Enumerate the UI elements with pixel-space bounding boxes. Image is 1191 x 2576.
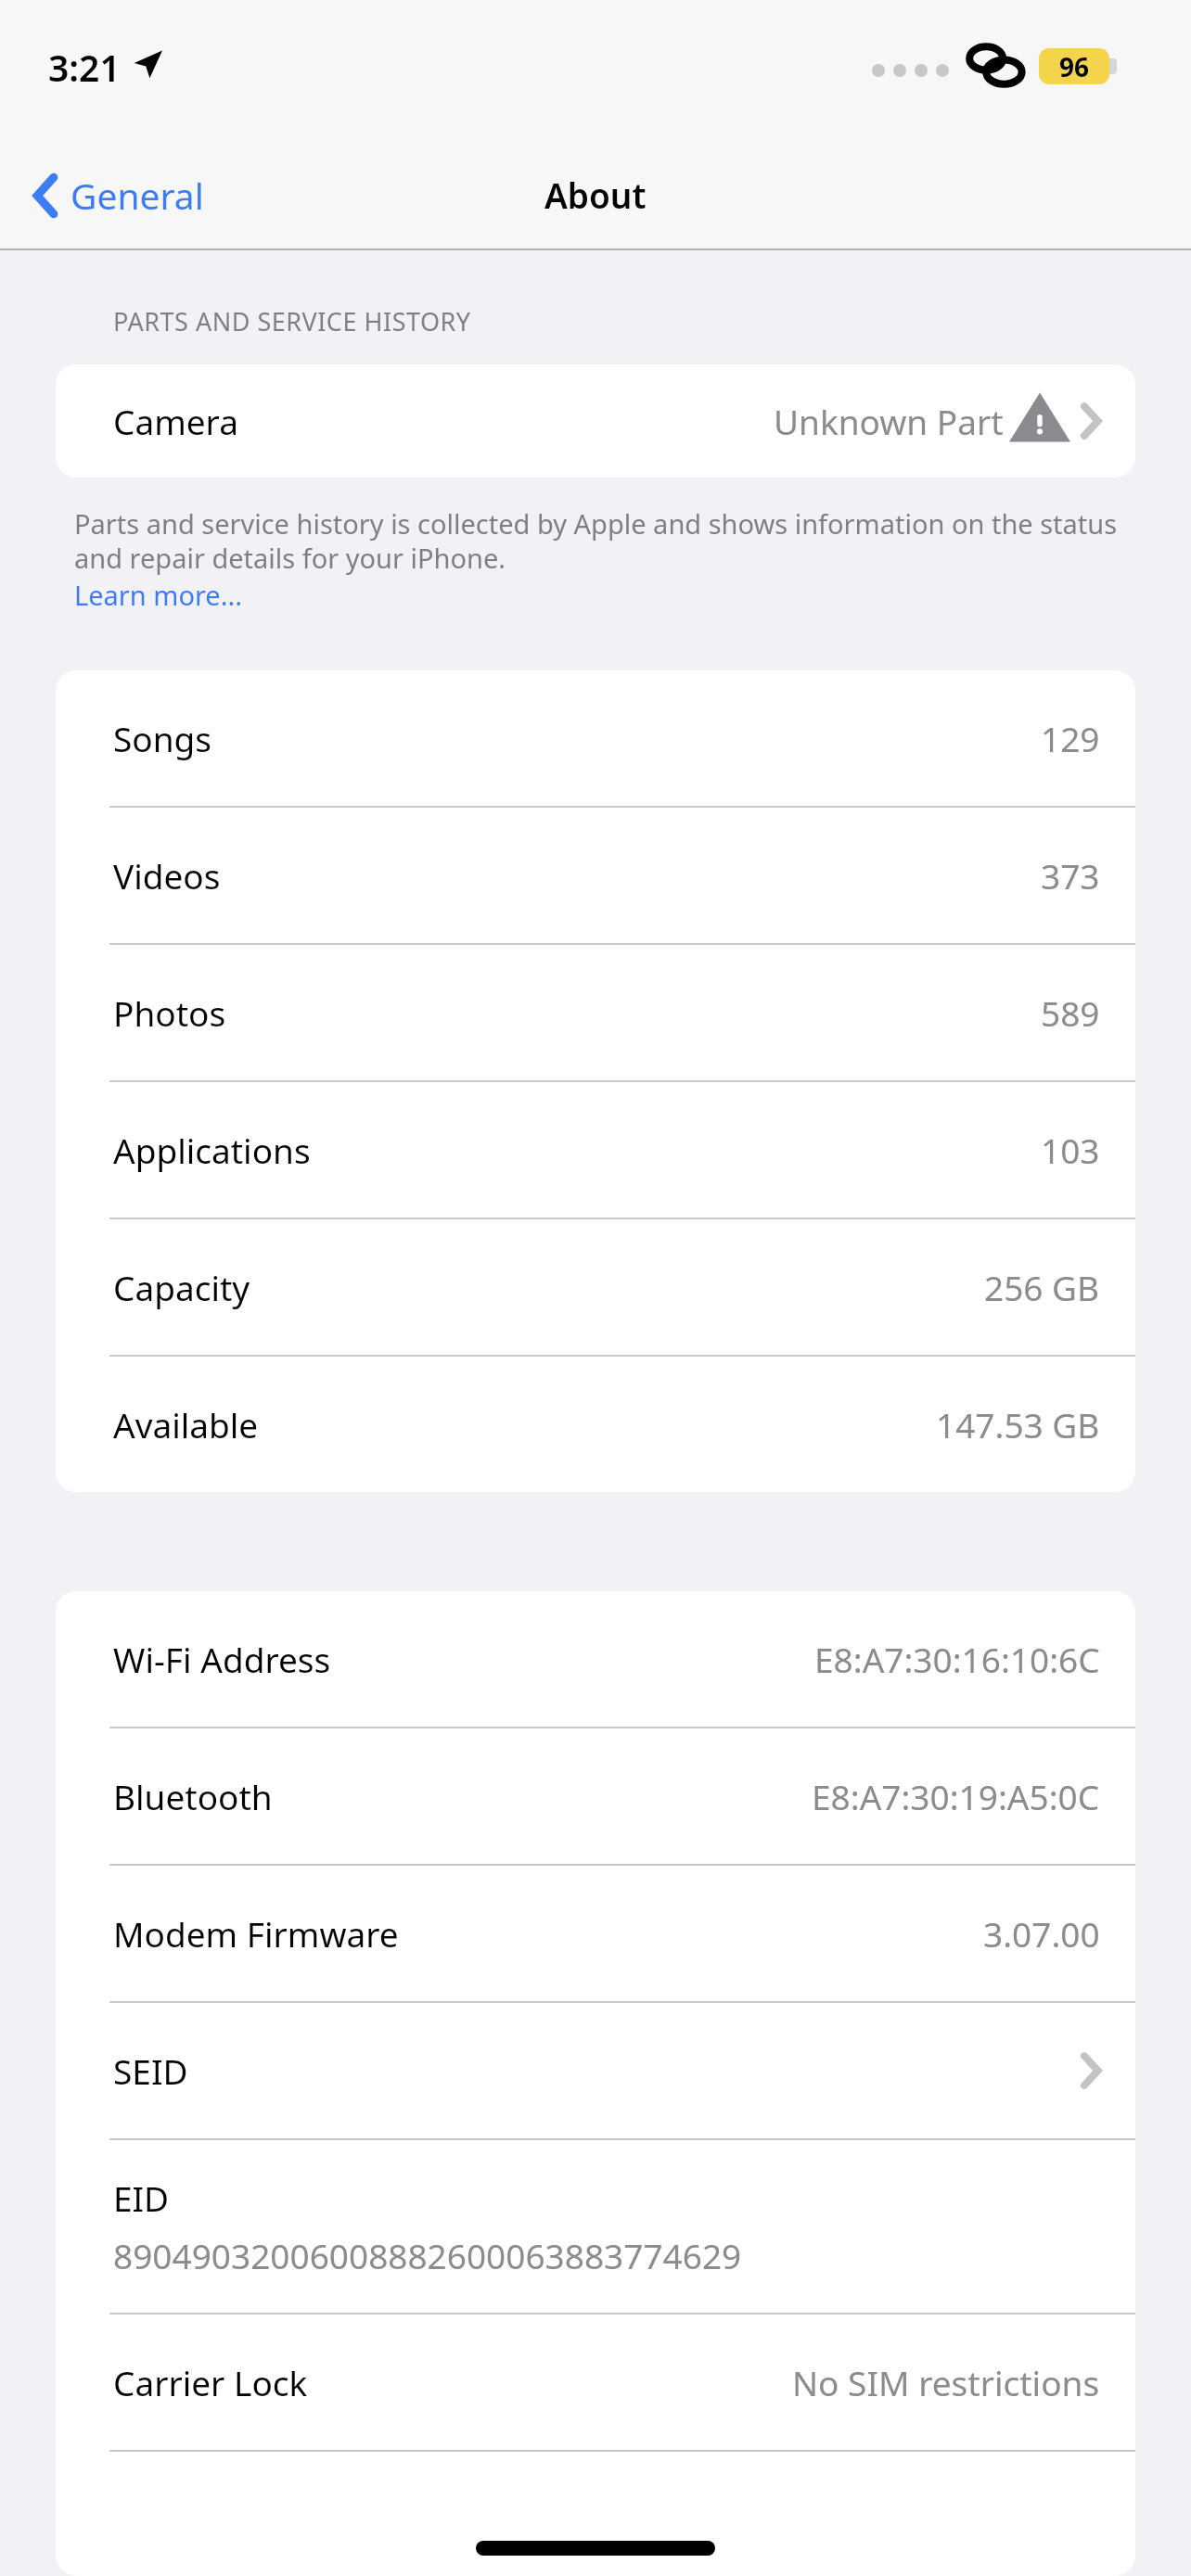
staticText: Unknown Part — [774, 398, 1004, 444]
staticText: About — [544, 172, 647, 218]
staticText: Modem Firmware — [113, 1910, 399, 1957]
staticText: General — [70, 171, 204, 220]
button[interactable]: Learn more... — [74, 577, 242, 613]
button[interactable]: EID — [56, 2140, 1135, 2313]
staticText: Bluetooth — [113, 1773, 273, 1819]
staticText: EID — [113, 2174, 170, 2221]
button[interactable]: Capacity — [56, 1219, 1135, 1355]
staticText: E8:A7:30:19:A5:0C — [812, 1773, 1100, 1819]
staticText: 89049032006008882600063883774629 — [113, 2232, 742, 2278]
staticText: Carrier Lock — [113, 2359, 308, 2405]
button[interactable]: SEID — [56, 2003, 1135, 2138]
button[interactable]: Photos — [56, 945, 1135, 1080]
button[interactable]: Carrier Lock — [56, 2315, 1135, 2450]
button[interactable]: Applications — [56, 1082, 1135, 1218]
staticText: 129 — [1041, 715, 1100, 761]
staticText: Songs — [113, 715, 212, 761]
other: Warning — [1017, 400, 1063, 443]
staticText: Parts and service history is collected b… — [74, 505, 1139, 577]
staticText: 103 — [1041, 1127, 1100, 1173]
staticText: PARTS AND SERVICE HISTORY — [113, 304, 471, 338]
staticText: E8:A7:30:16:10:6C — [814, 1636, 1100, 1682]
staticText: Available — [113, 1401, 259, 1447]
button[interactable]: Videos — [56, 808, 1135, 943]
other: More — [1082, 2054, 1100, 2087]
staticText: Photos — [113, 989, 226, 1036]
button[interactable]: Songs — [56, 670, 1135, 806]
staticText: 3.07.00 — [983, 1910, 1100, 1957]
staticText: Camera — [113, 398, 238, 444]
staticText: 589 — [1041, 989, 1100, 1036]
staticText: SEID — [113, 2047, 188, 2094]
button[interactable]: General — [22, 156, 215, 235]
staticText: Videos — [113, 852, 221, 899]
button[interactable]: Camera — [56, 364, 1135, 478]
staticText: 373 — [1041, 852, 1100, 899]
staticText: Learn more... — [74, 577, 242, 613]
staticText: Applications — [113, 1127, 311, 1173]
button[interactable]: Available — [56, 1357, 1135, 1492]
staticText: Capacity — [113, 1264, 250, 1310]
button[interactable]: Bluetooth — [56, 1728, 1135, 1864]
staticText: 96 — [1059, 49, 1090, 84]
staticText: 147.53 GB — [936, 1401, 1100, 1447]
staticText: No SIM restrictions — [792, 2359, 1100, 2405]
staticText: Wi-Fi Address — [113, 1636, 331, 1682]
button[interactable]: Wi-Fi Address — [56, 1591, 1135, 1727]
staticText: 3:21 — [48, 43, 121, 92]
button[interactable]: Modem Firmware — [56, 1866, 1135, 2001]
other: More — [1082, 404, 1100, 438]
staticText: 256 GB — [984, 1264, 1100, 1310]
